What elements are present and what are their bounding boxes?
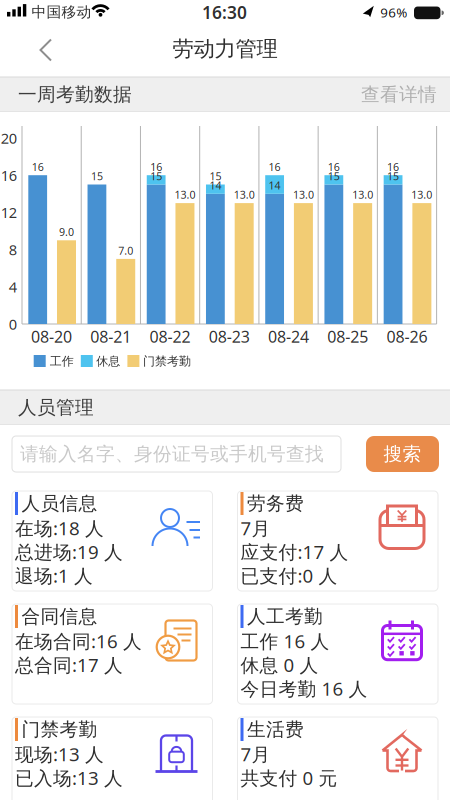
- staticText: 08-21: [90, 326, 131, 347]
- staticText: 应支付:17 人: [240, 539, 348, 564]
- staticText: 门禁考勤: [143, 354, 191, 369]
- staticText: 14: [269, 178, 281, 192]
- staticText: 15: [328, 169, 340, 183]
- staticText: 生活费: [247, 718, 304, 741]
- staticText: 人员管理: [18, 396, 94, 419]
- staticText: 16:30: [202, 1, 247, 24]
- staticText: 16: [269, 160, 281, 174]
- button[interactable]: 搜索: [366, 436, 439, 472]
- button[interactable]: 劳务费: [0, 0, 450, 800]
- staticText: 合同信息: [21, 605, 97, 628]
- staticText: 7月: [240, 742, 270, 766]
- staticText: 96%: [380, 3, 407, 21]
- staticText: 劳务费: [247, 492, 304, 515]
- staticText: 请输入名字、身份证号或手机号查找: [20, 442, 324, 465]
- staticText: 已支付:0 人: [240, 563, 337, 588]
- button[interactable]: 合同信息: [0, 0, 450, 800]
- staticText: 16: [328, 160, 340, 174]
- staticText: 15: [150, 169, 162, 183]
- staticText: 在场:18 人: [15, 516, 104, 540]
- staticText: 人员信息: [21, 492, 97, 515]
- staticText: 12: [1, 203, 17, 222]
- staticText: 13.0: [411, 188, 432, 202]
- staticText: 16: [387, 160, 399, 174]
- staticText: 0: [9, 314, 17, 334]
- staticText: 8: [9, 240, 17, 259]
- staticText: 13.0: [174, 188, 195, 202]
- staticText: 工作: [50, 354, 74, 369]
- staticText: 15: [387, 169, 399, 183]
- button[interactable]: 生活费: [0, 0, 450, 800]
- staticText: 16: [1, 165, 17, 185]
- staticText: 08-22: [150, 326, 191, 347]
- staticText: 查看详情: [361, 83, 437, 106]
- staticText: 共支付 0 元: [240, 765, 337, 790]
- staticText: 14: [209, 178, 221, 192]
- button[interactable]: 门禁考勤: [0, 0, 450, 800]
- staticText: 一周考勤数据: [18, 83, 132, 106]
- staticText: 今日考勤 16 人: [240, 676, 367, 701]
- staticText: 15: [91, 169, 103, 183]
- staticText: 4: [9, 277, 17, 297]
- staticText: 劳动力管理: [172, 36, 277, 62]
- staticText: 9.0: [59, 225, 74, 239]
- staticText: 中国移动: [31, 3, 91, 21]
- staticText: 13.0: [234, 188, 255, 202]
- staticText: 13.0: [352, 188, 373, 202]
- button[interactable]: 人员信息: [0, 0, 450, 800]
- staticText: 现场:13 人: [15, 742, 104, 766]
- staticText: 休息 0 人: [240, 652, 318, 677]
- staticText: 退场:1 人: [15, 563, 93, 588]
- staticText: 16: [32, 160, 44, 174]
- staticText: 搜索: [383, 442, 421, 465]
- staticText: 08-24: [268, 326, 309, 347]
- staticText: 16: [150, 160, 162, 174]
- button[interactable]: 查看详情: [0, 0, 450, 800]
- staticText: 7.0: [118, 243, 133, 258]
- button[interactable]: 人工考勤: [0, 0, 450, 800]
- staticText: 08-26: [386, 326, 427, 347]
- staticText: 13.0: [293, 188, 314, 202]
- staticText: 门禁考勤: [21, 718, 97, 741]
- staticText: 已入场:13 人: [15, 765, 123, 790]
- staticText: 15: [209, 169, 221, 183]
- staticText: 20: [1, 128, 17, 148]
- staticText: 08-20: [31, 326, 72, 347]
- staticText: 08-23: [209, 326, 250, 347]
- button[interactable]: 搜索输入框: [0, 0, 450, 800]
- staticText: 工作 16 人: [240, 629, 329, 653]
- staticText: 休息: [96, 354, 120, 369]
- staticText: 总合同:17 人: [15, 652, 123, 677]
- staticText: 在场合同:16 人: [15, 629, 142, 653]
- button[interactable]: 返回: [24, 28, 68, 72]
- staticText: 人工考勤: [247, 605, 323, 628]
- staticText: 08-25: [327, 326, 368, 347]
- staticText: 总进场:19 人: [15, 539, 123, 564]
- staticText: 7月: [240, 516, 270, 540]
